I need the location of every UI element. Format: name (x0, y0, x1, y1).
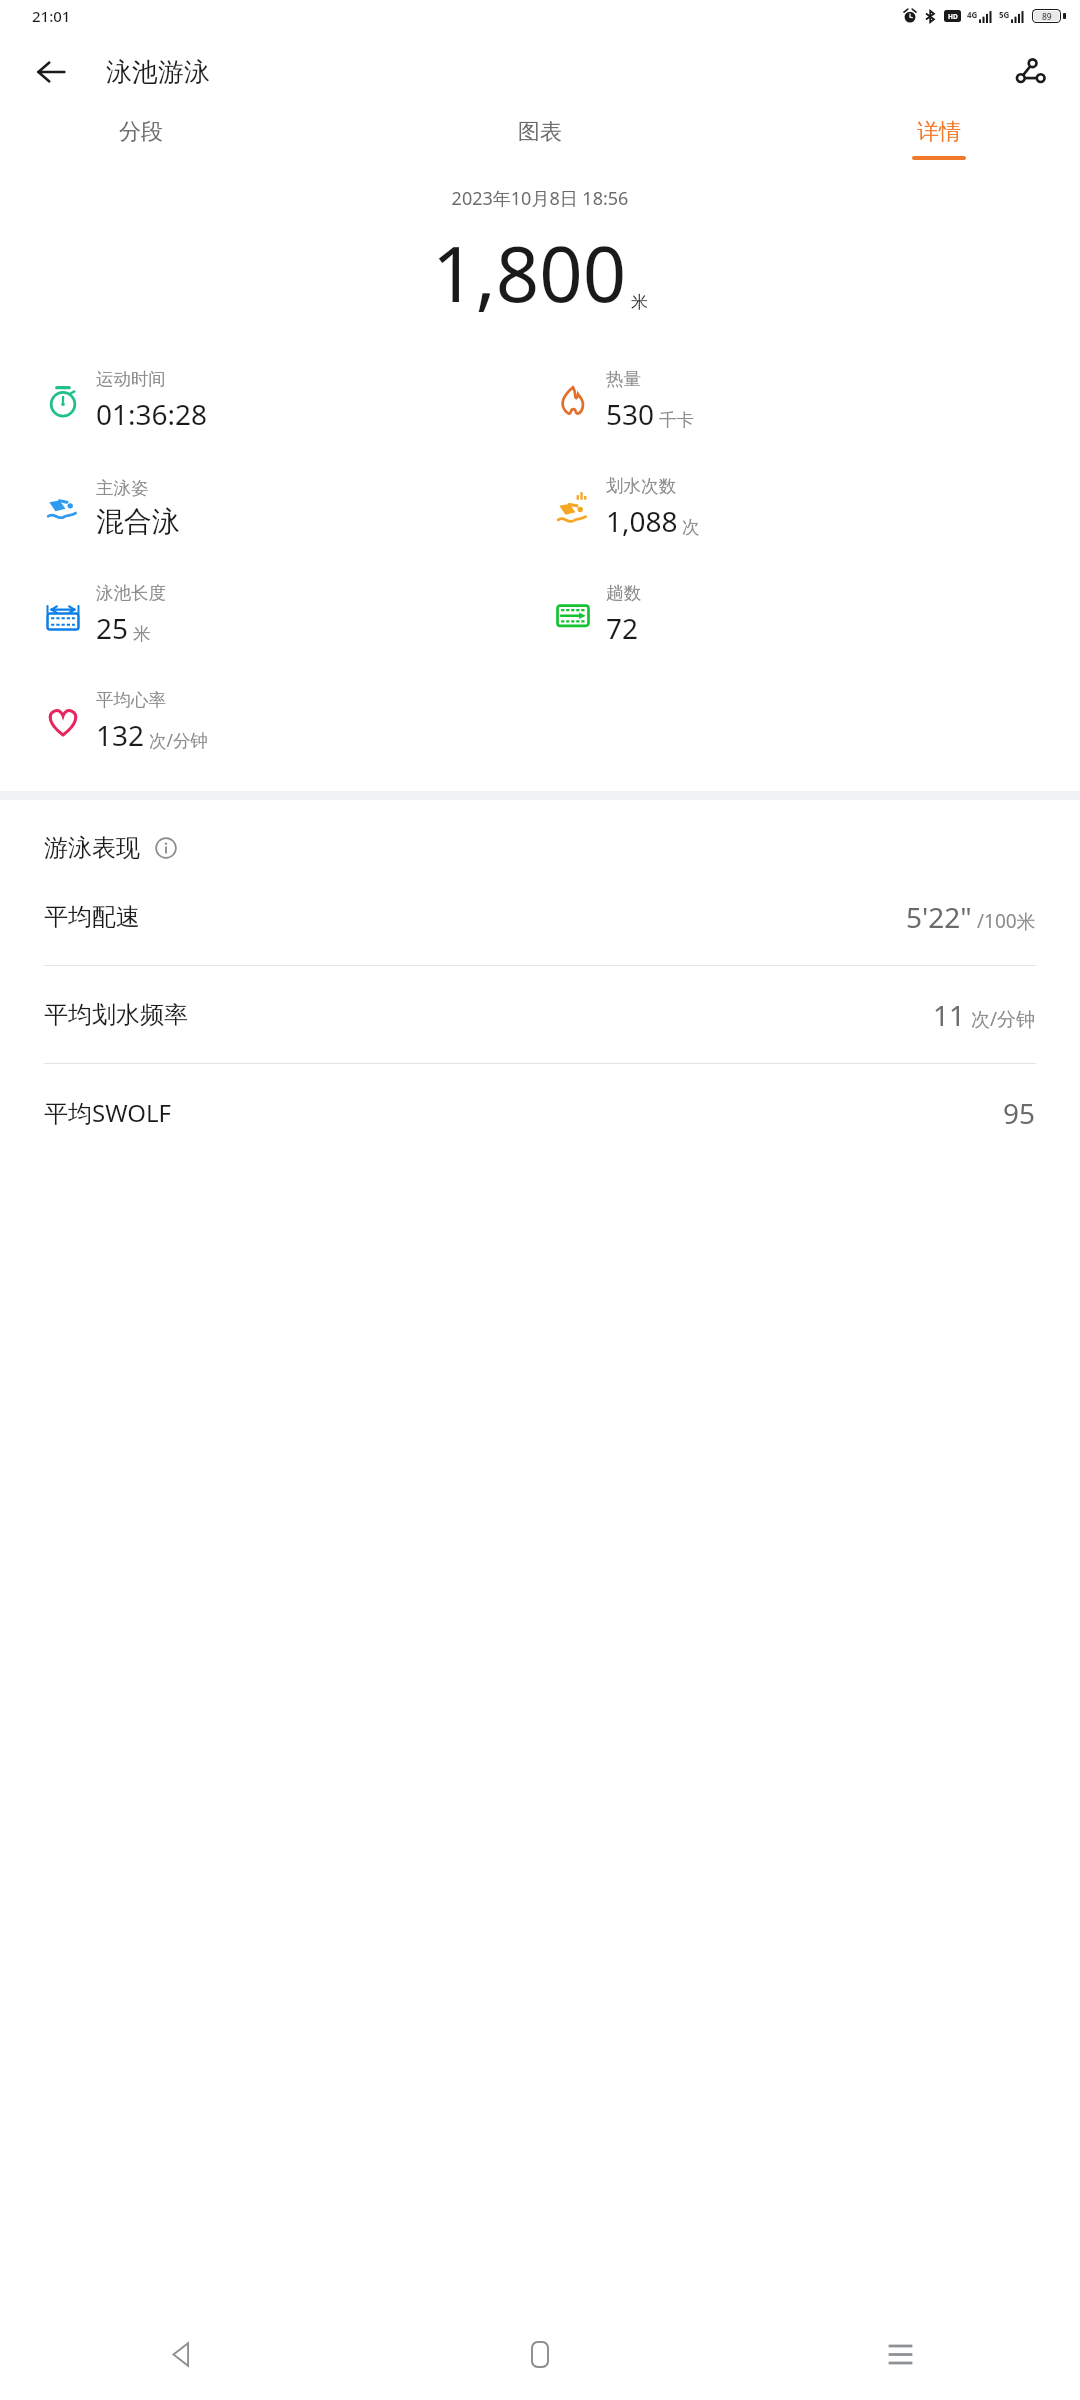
staticText: 11 (933, 996, 966, 1034)
button[interactable]: 详情 (902, 112, 976, 166)
staticText: 1,088 (606, 502, 678, 540)
staticText: 千卡 (659, 409, 694, 431)
staticText: 5'22" (906, 898, 972, 936)
staticText: 热量 (606, 368, 641, 390)
staticText: 1,800 (432, 221, 627, 325)
button[interactable]: Share (1000, 43, 1058, 101)
button[interactable]: 图表 (503, 112, 577, 166)
button[interactable]: 平均心率 (0, 668, 540, 775)
staticText: 25 (96, 609, 129, 647)
staticText: 次 (682, 516, 700, 538)
button[interactable]: 平均配速 (0, 868, 1080, 965)
staticText: 5G (999, 9, 1010, 20)
staticText: 平均心率 (96, 689, 166, 711)
button[interactable]: 运动时间 (0, 347, 540, 454)
button[interactable]: 平均SWOLF (0, 1064, 1080, 1161)
button[interactable]: 热量 (540, 347, 1080, 454)
button[interactable]: 主泳姿 (0, 454, 540, 561)
staticText: 详情 (917, 118, 961, 146)
staticText: 01:36:28 (96, 395, 208, 433)
staticText: 图表 (518, 118, 562, 146)
button[interactable]: 平均划水频率 (0, 966, 1080, 1063)
staticText: 游泳表现 (44, 833, 140, 863)
staticText: 平均SWOLF (44, 1096, 172, 1129)
staticText: 分段 (119, 118, 163, 146)
button[interactable]: Back (24, 45, 78, 99)
button[interactable]: Back (0, 2308, 360, 2400)
staticText: 89 (1042, 11, 1052, 21)
staticText: 次/分钟 (966, 1006, 1036, 1032)
button[interactable]: Home (360, 2308, 720, 2400)
staticText: 132 (96, 716, 145, 754)
button[interactable]: Info (150, 832, 182, 864)
staticText: 21:01 (32, 6, 71, 26)
staticText: 72 (606, 609, 639, 647)
staticText: 4G (967, 9, 978, 20)
staticText: 米 (631, 292, 648, 313)
staticText: 泳池游泳 (106, 56, 210, 89)
staticText: 泳池长度 (96, 582, 166, 604)
staticText: /100米 (972, 908, 1036, 934)
staticText: 米 (133, 623, 151, 645)
staticText: 次/分钟 (149, 728, 209, 752)
staticText: 2023年10月8日 18:56 (0, 186, 1080, 211)
staticText: 主泳姿 (96, 477, 149, 499)
button[interactable]: 分段 (104, 112, 178, 166)
staticText: 趟数 (606, 582, 641, 604)
staticText: 平均配速 (44, 902, 140, 932)
button[interactable]: Recents (720, 2308, 1080, 2400)
staticText: 划水次数 (606, 475, 676, 497)
button[interactable]: 泳池长度 (0, 561, 540, 668)
staticText: HD (948, 12, 958, 21)
button[interactable]: 划水次数 (540, 454, 1080, 561)
staticText: 95 (1003, 1094, 1036, 1132)
button[interactable]: 趟数 (540, 561, 1080, 668)
staticText: 530 (606, 395, 655, 433)
staticText: 平均划水频率 (44, 1000, 188, 1030)
staticText: 运动时间 (96, 368, 166, 390)
staticText: 混合泳 (96, 504, 180, 539)
